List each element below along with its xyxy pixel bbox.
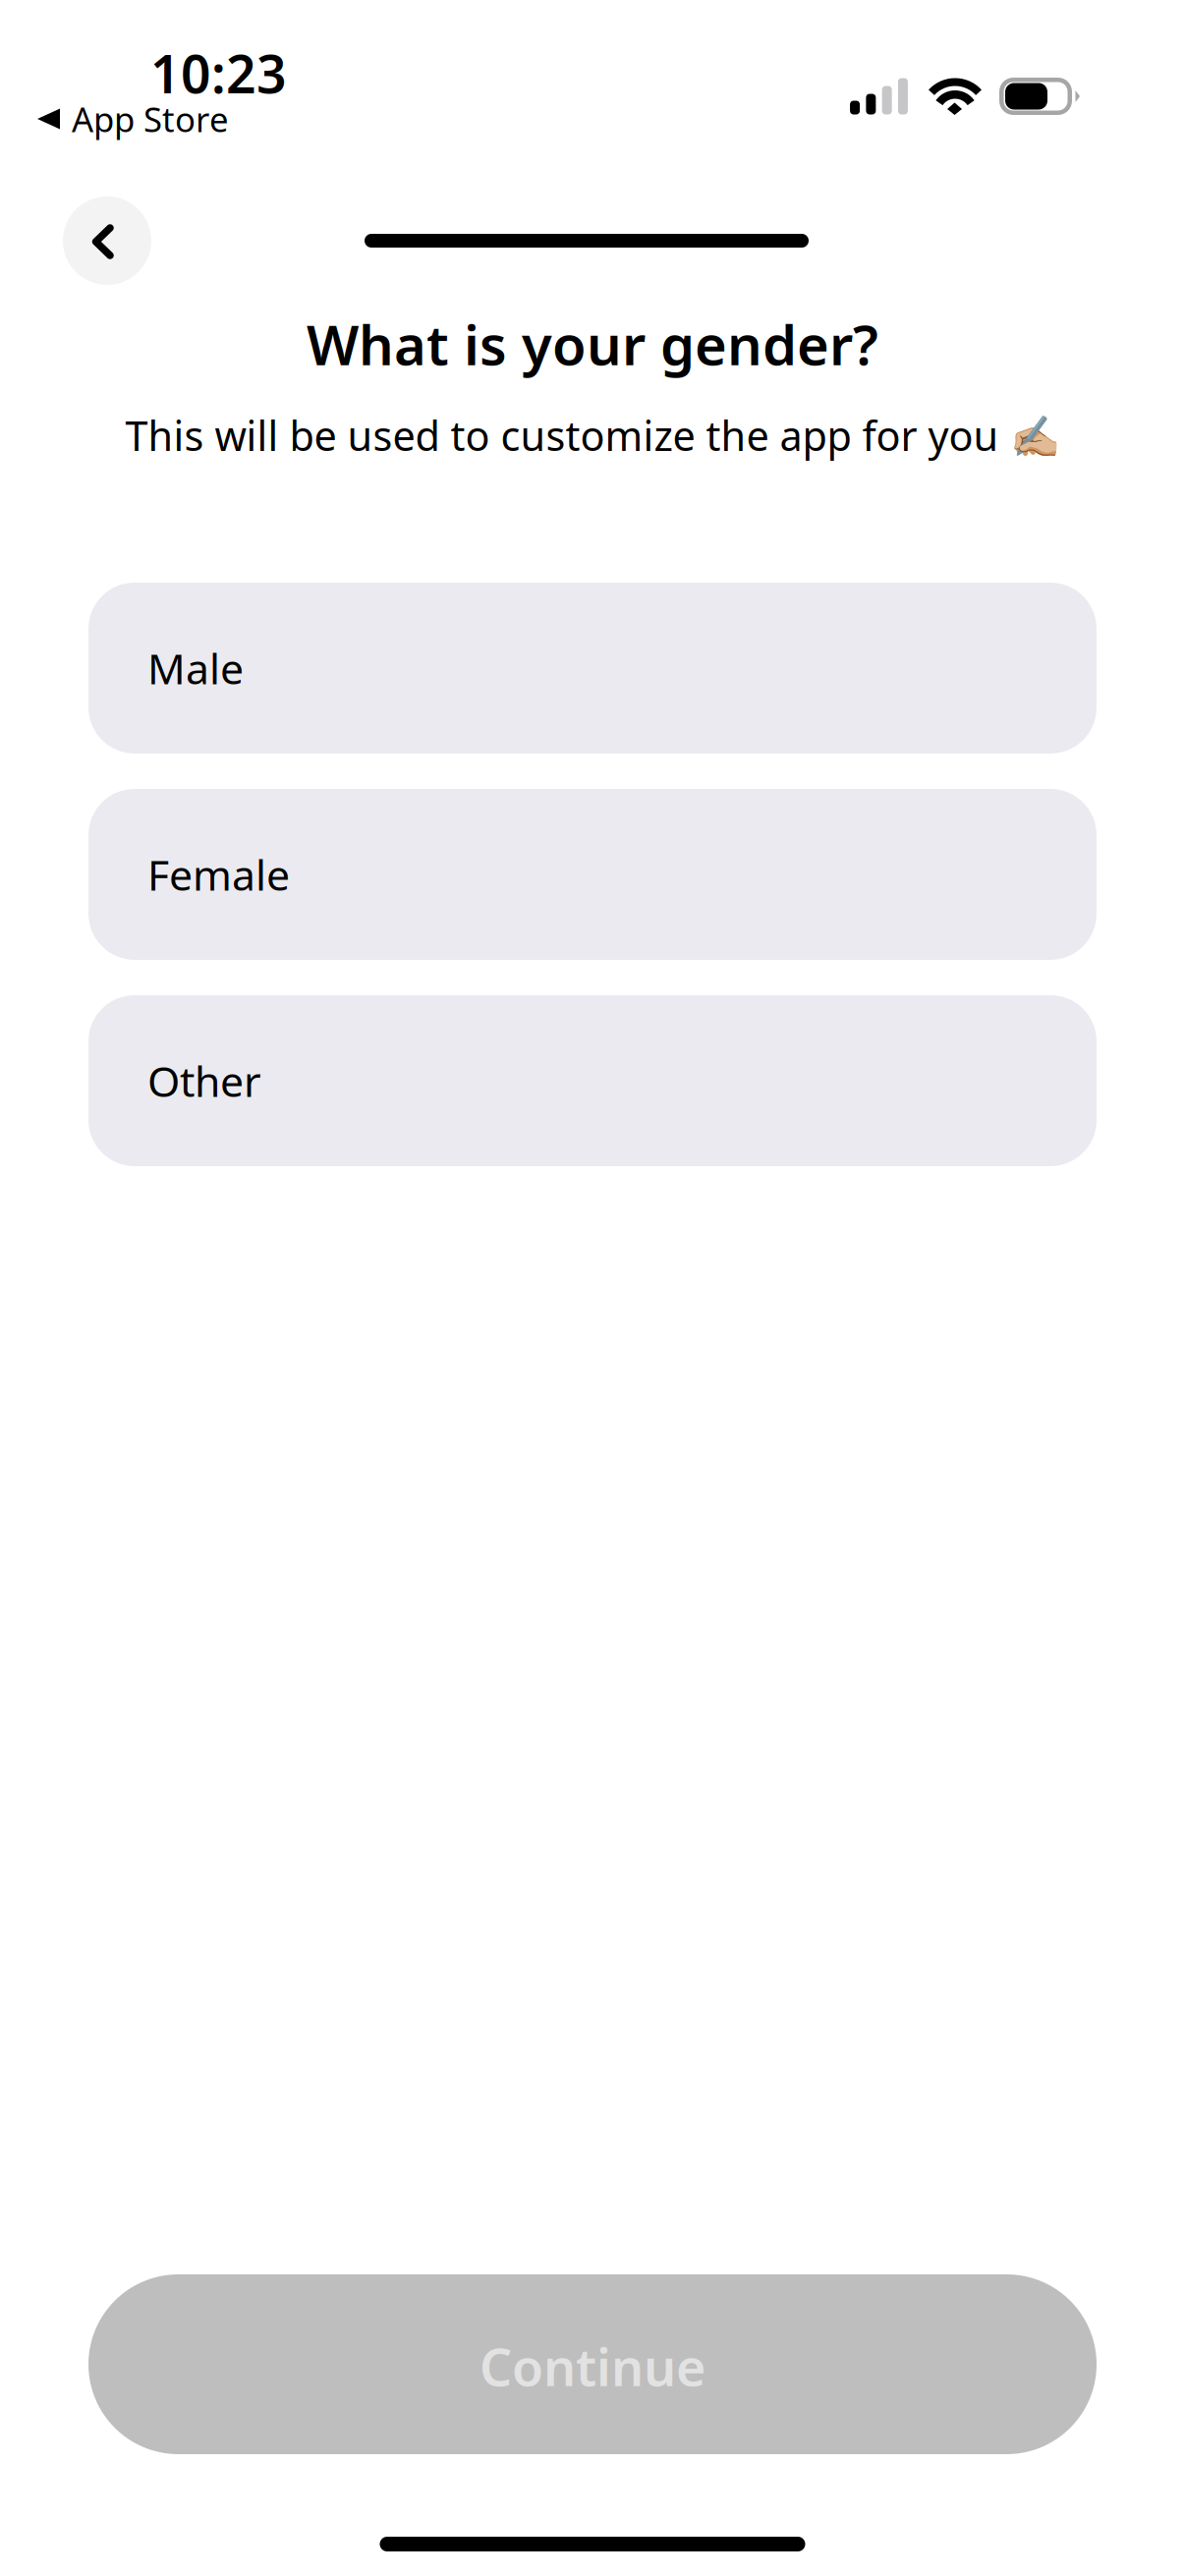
- button[interactable]: Other: [88, 995, 1097, 1166]
- button[interactable]: Male: [88, 583, 1097, 754]
- staticText: Continue: [480, 2332, 705, 2400]
- staticText: This will be used to customize the app f…: [125, 408, 1060, 462]
- staticText: What is your gender?: [307, 307, 878, 380]
- staticText: Female: [147, 847, 290, 902]
- staticText: Other: [147, 1053, 261, 1109]
- staticText: Male: [147, 640, 244, 696]
- button[interactable]: Female: [88, 789, 1097, 960]
- staticText: 10:23: [150, 38, 287, 108]
- staticText: App Store: [72, 96, 229, 141]
- button[interactable]: Back: [63, 196, 151, 285]
- button[interactable]: Continue: [88, 2274, 1097, 2454]
